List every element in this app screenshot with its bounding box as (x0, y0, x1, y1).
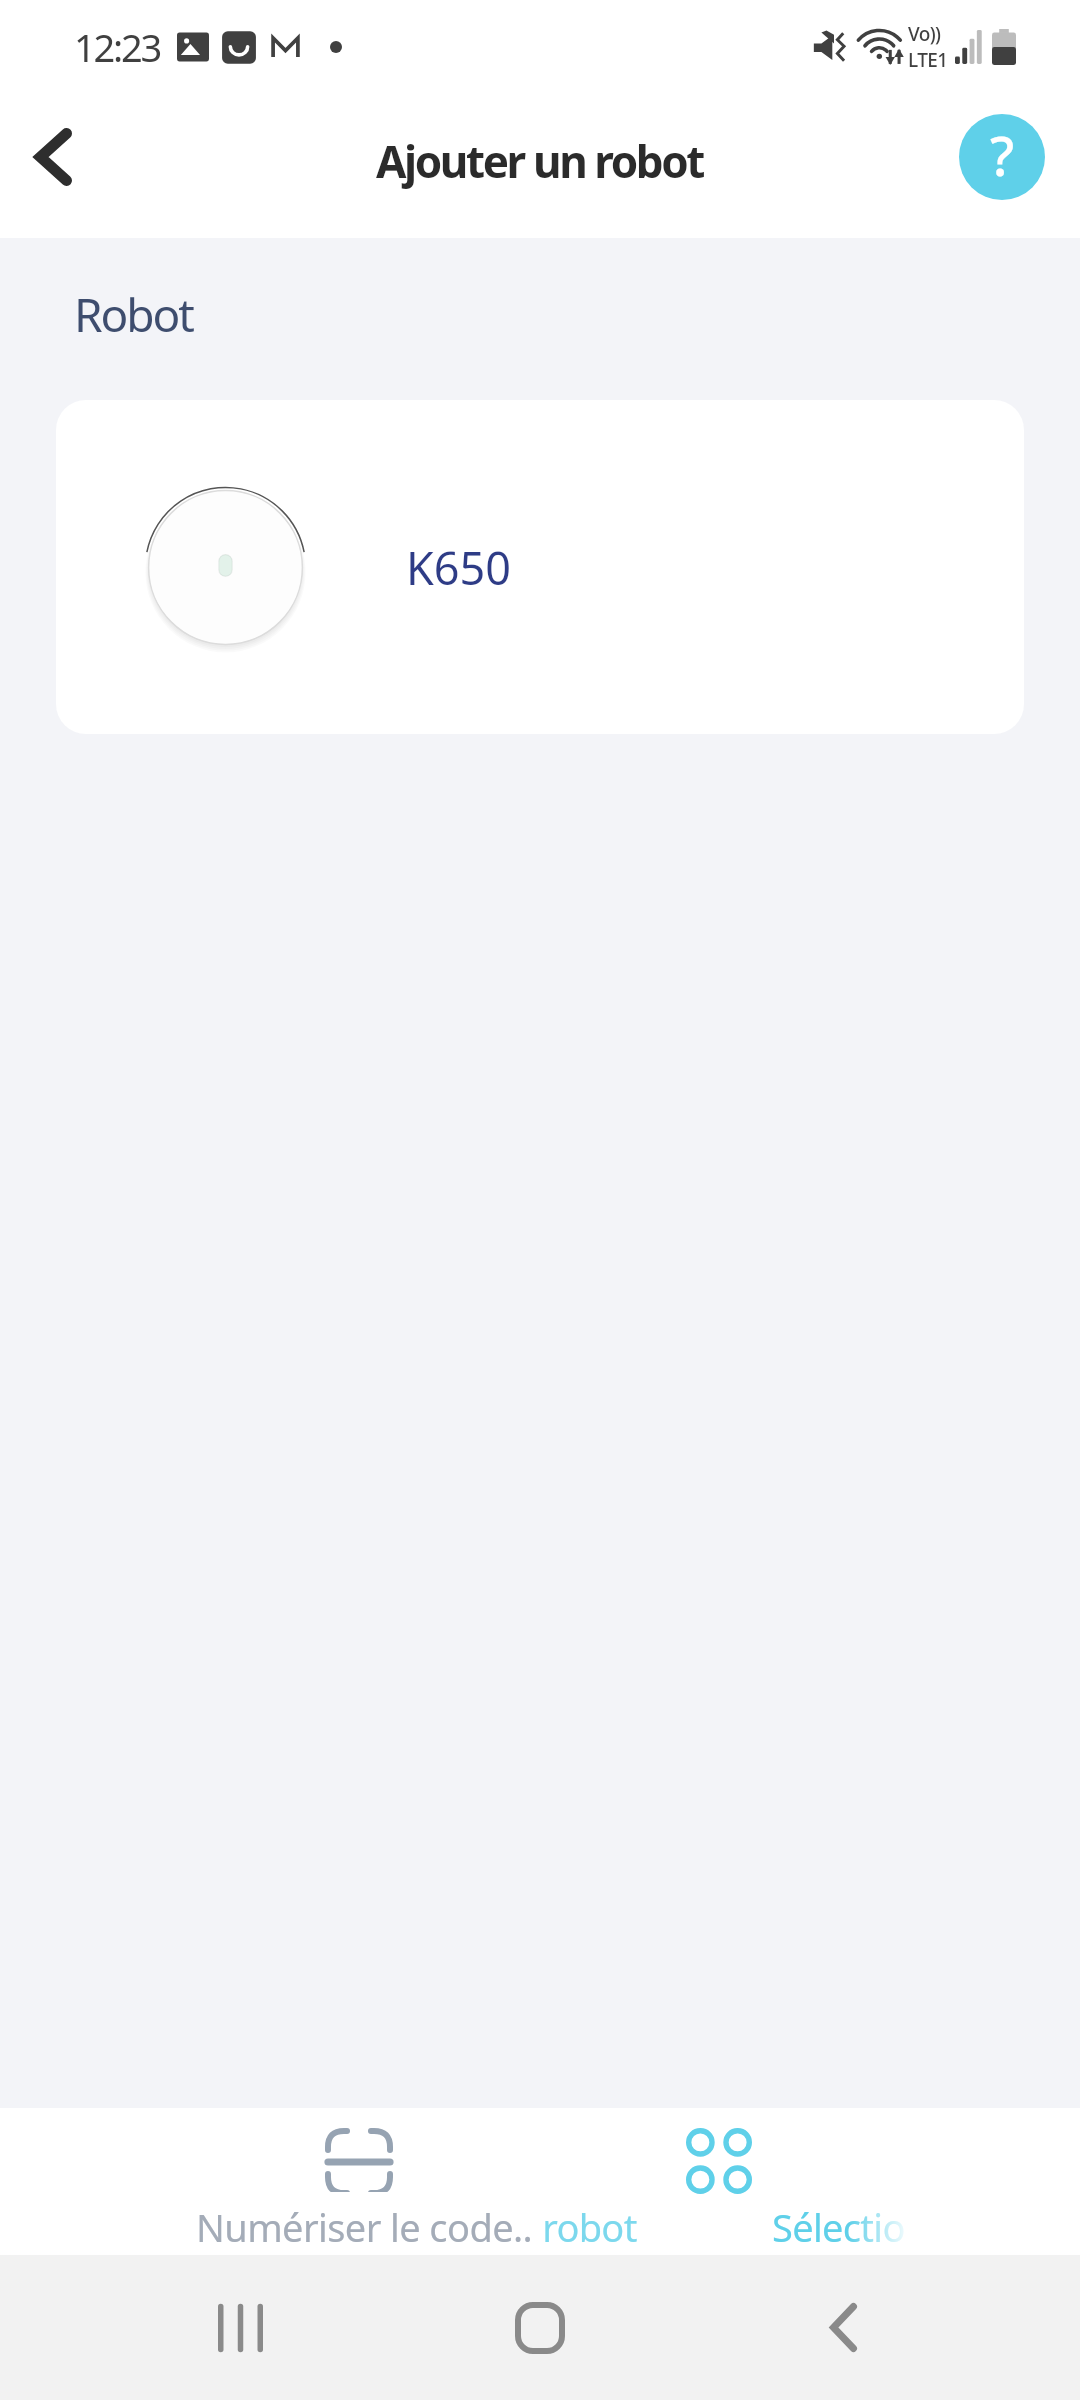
button[interactable]: Back (783, 2255, 903, 2400)
staticText: Ajouter un robot (376, 131, 704, 191)
button[interactable]: Help (959, 114, 1045, 200)
staticText: ? (990, 118, 1015, 192)
button[interactable]: K650 (56, 400, 1024, 734)
button[interactable]: Numériser le code du robot (0, 2108, 540, 2255)
staticText: Sélectionner le robot (772, 2201, 912, 2253)
staticText: Vo)) (908, 21, 941, 47)
button[interactable]: Back (0, 98, 106, 216)
button[interactable]: Recent apps (180, 2255, 300, 2400)
staticText: Robot (74, 283, 193, 346)
staticText: Sélectionner le robot (280, 2201, 637, 2253)
button[interactable]: Sélectionner le robot (540, 2108, 1080, 2255)
staticText: Numériser le code.. (196, 2201, 533, 2253)
button[interactable]: Home (480, 2255, 600, 2400)
staticText: LTE1 (908, 47, 948, 73)
staticText: 12:23 (74, 21, 161, 73)
staticText: K650 (406, 537, 512, 598)
